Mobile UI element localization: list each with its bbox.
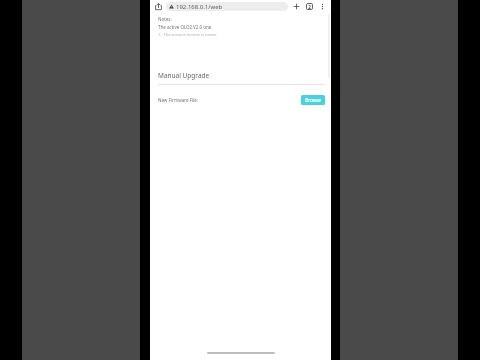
button[interactable]: Share xyxy=(153,1,164,12)
button[interactable]: 192.168.0.1/web xyxy=(166,2,288,11)
button[interactable]: Browse xyxy=(301,95,325,105)
button[interactable]: More options xyxy=(317,1,328,12)
staticText: New Firmware File: xyxy=(158,97,199,103)
button[interactable]: Switch tabs, 2 open xyxy=(304,1,315,12)
staticText: Manual Upgrade xyxy=(158,71,210,80)
staticText: 192.168.0.1/web xyxy=(176,3,223,11)
staticText: Notes: xyxy=(158,16,172,22)
staticText: 1. The current version is newer xyxy=(158,32,217,37)
staticText: The active OLD2.V2.0 one xyxy=(158,24,212,30)
staticText: Browse xyxy=(305,97,321,103)
staticText: 2 xyxy=(308,4,311,10)
button[interactable]: New tab xyxy=(291,1,302,12)
